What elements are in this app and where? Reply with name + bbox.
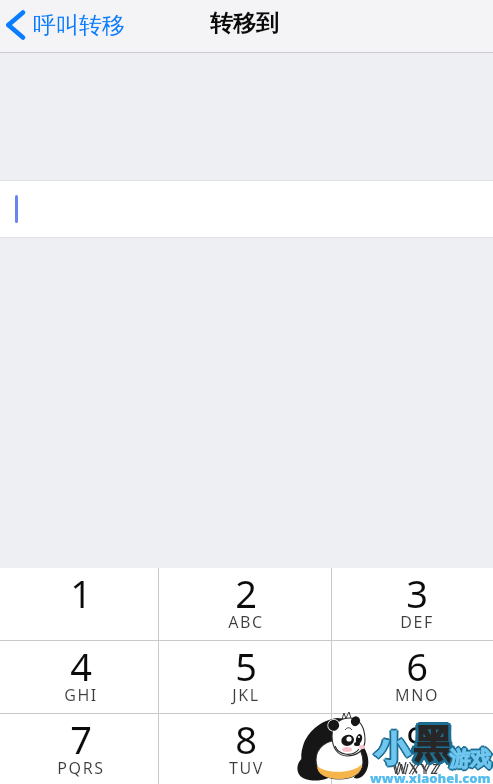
staticText: 黑 [413,722,451,770]
staticText: 游戏 [450,746,492,772]
staticText: 小 [374,729,408,772]
button[interactable]: 8 [159,714,331,784]
other: Back [6,10,24,40]
staticText: 游戏 [448,747,490,773]
staticText: 游戏 [449,745,491,771]
staticText: WXYZ [394,759,443,781]
staticText: 黑 [415,718,453,766]
staticText: 小 [373,728,407,771]
staticText: MNO [395,684,439,706]
staticText: 6 [406,640,428,692]
staticText: 1 [70,567,92,619]
staticText: 小 [374,728,408,771]
staticText: 4 [70,640,92,692]
staticText: GHI [64,684,98,706]
staticText: 3 [406,567,428,619]
button[interactable]: Back [0,8,135,46]
staticText: 5 [235,640,257,692]
staticText: www.xiaohei.com [370,769,491,784]
staticText: 黑 [414,717,452,765]
staticText: www.xiaohei.com [369,769,490,784]
staticText: 黑 [416,721,454,769]
staticText: 黑 [414,722,452,770]
staticText: www.xiaohei.com [369,768,490,784]
staticText: 黑 [411,720,449,768]
button[interactable]: 7 [0,714,158,784]
staticText: 呼叫转移 [33,11,125,40]
staticText: 黑 [413,720,451,768]
staticText: 黑 [416,720,454,768]
button[interactable]: 4 [0,641,158,713]
staticText: JKL [232,684,260,706]
staticText: TUV [229,757,264,779]
staticText: 黑 [412,721,450,769]
staticText: 小 [375,728,409,771]
staticText: www.xiaohei.com [369,770,490,784]
staticText: 小 [376,727,410,770]
staticText: 黑 [415,722,453,770]
staticText: www.xiaohei.com [371,769,492,784]
staticText: 黑 [413,719,451,767]
staticText: 游戏 [449,748,491,774]
staticText: 游戏 [450,747,492,773]
staticText: 黑 [414,720,452,768]
staticText: www.xiaohei.com [370,767,491,784]
staticText: 8 [235,713,257,765]
staticText: 小 [377,728,411,771]
button[interactable]: 2 [159,568,331,640]
staticText: 小 [375,729,409,772]
staticText: 黑 [416,719,454,767]
staticText: 黑 [412,719,450,767]
staticText: 游戏 [448,745,490,771]
staticText: 黑 [413,718,451,766]
staticText: 黑 [415,719,453,767]
staticText: 黑 [414,721,452,769]
staticText: 黑 [415,721,453,769]
staticText: 黑 [413,721,451,769]
staticText: 黑 [414,723,452,771]
staticText: 游戏 [450,745,492,771]
button[interactable]: 9 [332,714,493,784]
staticText: 游戏 [449,747,491,773]
staticText: PQRS [57,757,105,779]
staticText: 小 [375,726,409,769]
staticText: www.xiaohei.com [370,768,491,784]
staticText: www.xiaohei.com [368,769,489,784]
staticText: 游戏 [449,746,491,772]
staticText: 黑 [415,720,453,768]
staticText: 小 [376,728,410,771]
button[interactable]: 5 [159,641,331,713]
staticText: 黑 [412,722,450,770]
staticText: WXYZ [392,757,441,779]
staticText: 黑 [412,720,450,768]
staticText: www.xiaohei.com [372,769,493,784]
staticText: 黑 [416,722,454,770]
staticText: 小 [375,730,409,773]
staticText: 黑 [414,718,452,766]
staticText: 2 [235,567,257,619]
staticText: www.xiaohei.com [370,771,491,784]
staticText: 黑 [416,718,454,766]
staticText: 黑 [417,720,455,768]
staticText: ABC [228,611,264,633]
staticText: DEF [400,611,434,633]
staticText: www.xiaohei.com [371,770,492,784]
button[interactable]: 6 [332,641,493,713]
staticText: 黑 [414,719,452,767]
staticText: 小 [375,727,409,770]
staticText: 小 [376,729,410,772]
staticText: 转移到 [210,9,279,38]
staticText: 9 [406,713,428,765]
staticText: www.xiaohei.com [371,768,492,784]
staticText: 黑 [412,718,450,766]
staticText: 7 [70,713,92,765]
staticText: www.xiaohei.com [370,770,491,784]
button[interactable]: 3 [332,568,493,640]
button[interactable] [0,180,493,238]
staticText: 游戏 [449,744,491,770]
staticText: 游戏 [448,746,490,772]
staticText: 游戏 [447,746,489,772]
button[interactable]: 1 [0,568,158,640]
staticText: 游戏 [451,746,493,772]
staticText: 小 [374,727,408,770]
